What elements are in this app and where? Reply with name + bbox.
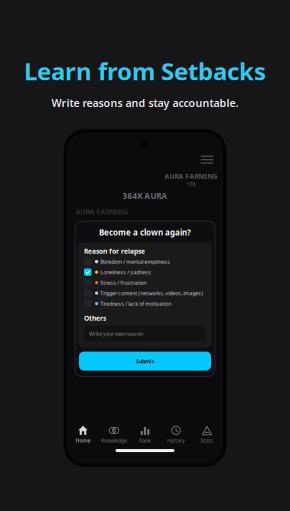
button[interactable]: Loneliness / sadness <box>84 268 206 276</box>
staticText: Stress / frustration <box>100 279 146 286</box>
staticText: Reason for relapse <box>84 247 145 256</box>
button[interactable]: Knowledge <box>98 425 129 444</box>
staticText: Write your own reason <box>89 330 143 337</box>
button[interactable]: Home <box>67 425 98 444</box>
staticText: +70 <box>186 181 195 188</box>
button[interactable]: Stress / frustration <box>84 278 206 287</box>
staticText: Become a clown again? <box>99 227 191 238</box>
button[interactable]: Write your own reason <box>84 326 206 342</box>
button[interactable]: Stats <box>191 425 222 444</box>
button[interactable]: Tiredness / lack of motivation <box>84 299 206 308</box>
staticText: 364K AURA <box>122 191 167 201</box>
staticText: AURA FARMING <box>75 207 128 216</box>
button[interactable]: Trigger content (networks, videos, image… <box>84 289 206 297</box>
staticText: Others <box>84 314 106 323</box>
button[interactable]: Rank <box>129 425 160 444</box>
button[interactable]: History <box>160 425 191 444</box>
staticText: Trigger content (networks, videos, image… <box>100 290 203 297</box>
staticText: Loneliness / sadness <box>100 269 151 276</box>
button[interactable]: Menu <box>197 152 216 167</box>
staticText: Rank <box>139 437 151 444</box>
staticText: Write reasons and stay accountable. <box>51 96 238 110</box>
staticText: History <box>167 437 185 444</box>
staticText: Stats <box>200 437 213 444</box>
staticText: Learn from Setbacks <box>24 55 266 87</box>
staticText: AURA FARMING <box>164 172 217 181</box>
staticText: Submit <box>136 357 154 365</box>
button[interactable]: Submit <box>79 352 211 371</box>
staticText: Tiredness / lack of motivation <box>100 300 171 307</box>
staticText: Knowledge <box>101 437 127 444</box>
staticText: Boredom / mental emptiness <box>100 258 170 265</box>
button[interactable]: Boredom / mental emptiness <box>84 257 206 266</box>
staticText: Home <box>75 437 90 444</box>
